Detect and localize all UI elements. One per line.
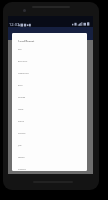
button[interactable]: Metal: [12, 103, 87, 115]
button[interactable]: Country: [12, 127, 87, 139]
staticText: Speech: [18, 156, 25, 159]
staticText: Rock: [18, 84, 22, 87]
button[interactable]: Dance: [12, 115, 87, 127]
button[interactable]: Classical: [12, 163, 87, 171]
staticText: Jazz: [18, 144, 22, 147]
staticText: Grunge: [18, 96, 25, 99]
staticText: Flat: [18, 48, 21, 51]
button[interactable]: Bass Only: [12, 55, 87, 67]
staticText: Treble Only: [18, 72, 29, 75]
button[interactable]: Grunge: [12, 91, 87, 103]
button[interactable]: Rock: [12, 79, 87, 91]
staticText: Country: [18, 132, 26, 135]
staticText: Metal: [18, 108, 23, 111]
staticText: Classical: [18, 168, 26, 171]
button[interactable]: Treble Only: [12, 67, 87, 79]
staticText: 12:07: [9, 22, 20, 27]
staticText: Load Preset: [18, 40, 34, 42]
staticText: Dance: [18, 120, 24, 123]
staticText: Bass Only: [18, 60, 27, 63]
button[interactable]: Speech: [12, 151, 87, 163]
